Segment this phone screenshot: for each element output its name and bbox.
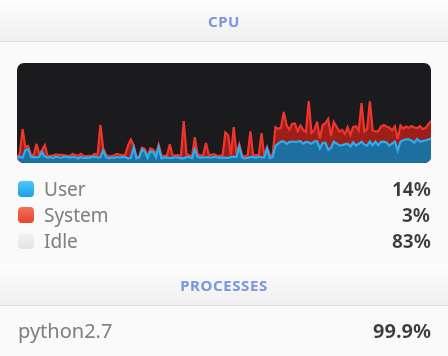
staticText: CPU xyxy=(0,11,448,31)
button[interactable]: User xyxy=(0,176,448,202)
staticText: 83% xyxy=(392,228,431,254)
staticText: 99.9% xyxy=(373,317,431,344)
staticText: Idle xyxy=(44,228,78,254)
staticText: 14% xyxy=(392,176,431,202)
button[interactable]: python2.7 xyxy=(0,306,448,354)
button[interactable]: System xyxy=(0,202,448,228)
staticText: User xyxy=(44,176,86,202)
staticText: PROCESSES xyxy=(0,275,448,295)
staticText: python2.7 xyxy=(18,317,113,344)
staticText: 3% xyxy=(402,202,431,228)
staticText: System xyxy=(44,202,109,228)
other: CPU usage history graph xyxy=(17,63,431,163)
button[interactable]: Idle xyxy=(0,228,448,254)
